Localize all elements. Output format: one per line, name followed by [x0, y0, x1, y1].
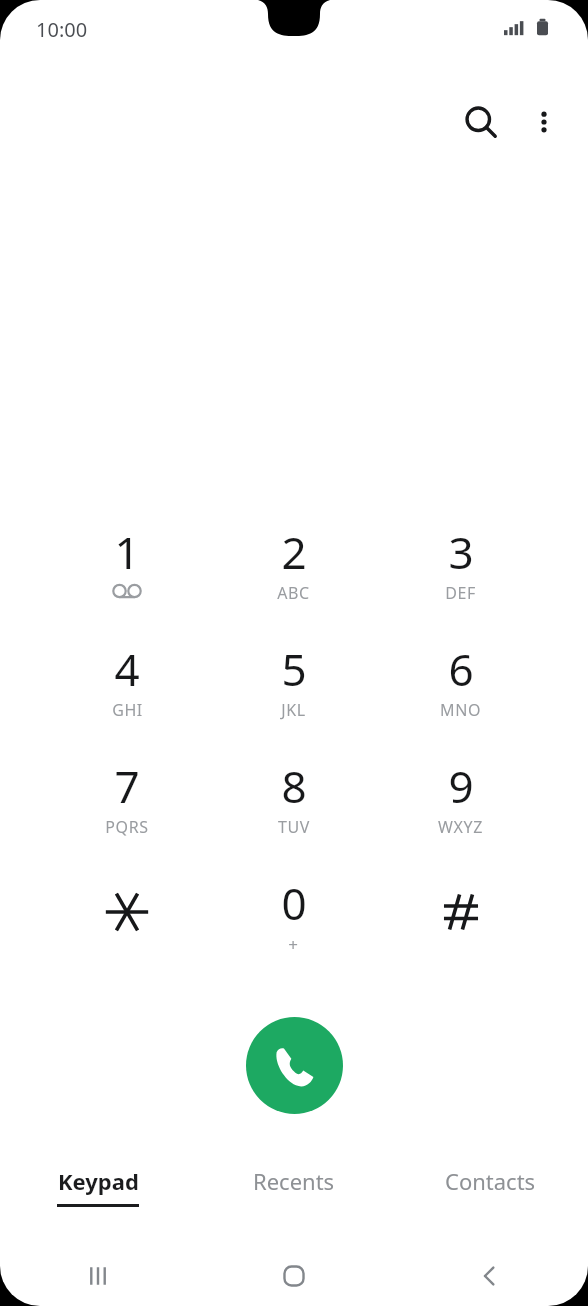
button[interactable]: Home	[196, 1246, 392, 1306]
button[interactable]: More options	[514, 92, 574, 152]
staticText: 9	[448, 756, 474, 816]
staticText: Keypad	[58, 1166, 139, 1196]
staticText: ABC	[277, 582, 310, 604]
button[interactable]: Search	[448, 89, 514, 155]
button[interactable]: 4	[44, 639, 210, 756]
button[interactable]: Call	[246, 1017, 343, 1114]
staticText: DEF	[445, 582, 476, 604]
staticText: TUV	[278, 816, 310, 838]
staticText: PQRS	[105, 816, 149, 838]
button[interactable]: Recents	[196, 1166, 392, 1226]
button[interactable]: 6	[377, 639, 544, 756]
staticText: 7	[114, 756, 140, 816]
staticText: Contacts	[445, 1166, 536, 1196]
staticText: 10:00	[36, 16, 88, 43]
staticText: 0	[281, 873, 307, 933]
button[interactable]: 2	[210, 522, 377, 639]
staticText: MNO	[440, 699, 481, 721]
staticText: WXYZ	[438, 816, 483, 838]
button[interactable]: 0	[210, 873, 377, 990]
staticText: GHI	[112, 699, 143, 721]
staticText: 2	[281, 522, 307, 582]
staticText: 8	[281, 756, 307, 816]
button[interactable]	[44, 873, 210, 990]
staticText: JKL	[281, 699, 306, 721]
button[interactable]: 7	[44, 756, 210, 873]
staticText: 1	[114, 522, 140, 582]
button[interactable]: 5	[210, 639, 377, 756]
staticText: 4	[114, 639, 140, 699]
staticText: 5	[281, 639, 307, 699]
staticText: Recents	[253, 1166, 335, 1196]
staticText: 6	[448, 639, 474, 699]
button[interactable]: 9	[377, 756, 544, 873]
button[interactable]: Contacts	[392, 1166, 588, 1226]
button[interactable]: Back	[392, 1246, 588, 1306]
button[interactable]: Recent apps	[0, 1246, 196, 1306]
button[interactable]: 1	[44, 522, 210, 639]
button[interactable]: Keypad	[0, 1166, 196, 1226]
staticText: 3	[448, 522, 474, 582]
button[interactable]	[377, 873, 544, 990]
staticText: +	[288, 933, 299, 956]
button[interactable]: 8	[210, 756, 377, 873]
button[interactable]: 3	[377, 522, 544, 639]
